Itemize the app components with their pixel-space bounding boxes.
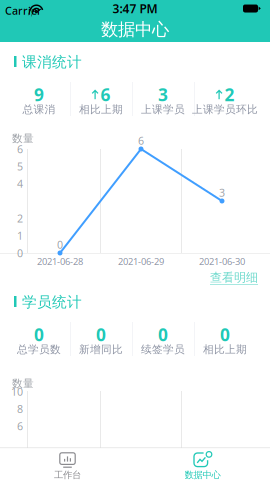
- staticText: 2021-06-30: [199, 255, 245, 268]
- staticText: 8: [17, 402, 23, 416]
- staticText: 6: [17, 142, 23, 156]
- staticText: 总课消: [22, 103, 55, 116]
- staticText: 6: [17, 419, 23, 433]
- staticText: 0: [34, 323, 44, 346]
- staticText: 查看明细: [210, 270, 258, 285]
- staticText: 续签学员: [141, 343, 185, 356]
- staticText: 3: [158, 83, 168, 106]
- staticText: 相比上期: [79, 103, 123, 116]
- button[interactable]: 查看明细: [0, 0, 60, 13]
- staticText: 工作台: [54, 469, 81, 480]
- staticText: 数量: [12, 377, 34, 390]
- staticText: 数据中心: [101, 19, 169, 40]
- staticText: 2: [17, 211, 23, 225]
- staticText: 0: [220, 323, 230, 346]
- staticText: 9: [34, 83, 44, 106]
- staticText: 总学员数: [17, 343, 61, 356]
- staticText: 6: [100, 83, 110, 106]
- staticText: 0: [17, 246, 23, 260]
- staticText: 2021-06-29: [118, 255, 164, 268]
- staticText: 0: [158, 323, 168, 346]
- staticText: 2: [224, 83, 234, 106]
- staticText: 0: [96, 323, 106, 346]
- staticText: 新增同比: [79, 343, 123, 356]
- staticText: 5: [17, 159, 23, 173]
- button[interactable]: 工作台: [0, 0, 135, 32]
- staticText: 上课学员环比: [192, 103, 258, 116]
- staticText: 数量: [12, 132, 34, 145]
- staticText: 10: [11, 384, 23, 399]
- staticText: 数据中心: [184, 469, 220, 480]
- staticText: 相比上期: [203, 343, 247, 356]
- staticText: 6: [138, 133, 144, 148]
- staticText: 学员统计: [22, 293, 82, 311]
- staticText: 3:47 PM: [112, 0, 157, 16]
- staticText: 4: [17, 177, 23, 191]
- staticText: Carrier: [5, 3, 42, 18]
- staticText: 0: [57, 237, 63, 252]
- staticText: 上课学员: [141, 103, 185, 116]
- staticText: 1: [17, 229, 23, 243]
- staticText: 课消统计: [22, 53, 82, 71]
- staticText: 3: [219, 185, 225, 200]
- staticText: 2021-06-28: [37, 255, 83, 268]
- button[interactable]: 数据中心: [0, 0, 135, 32]
